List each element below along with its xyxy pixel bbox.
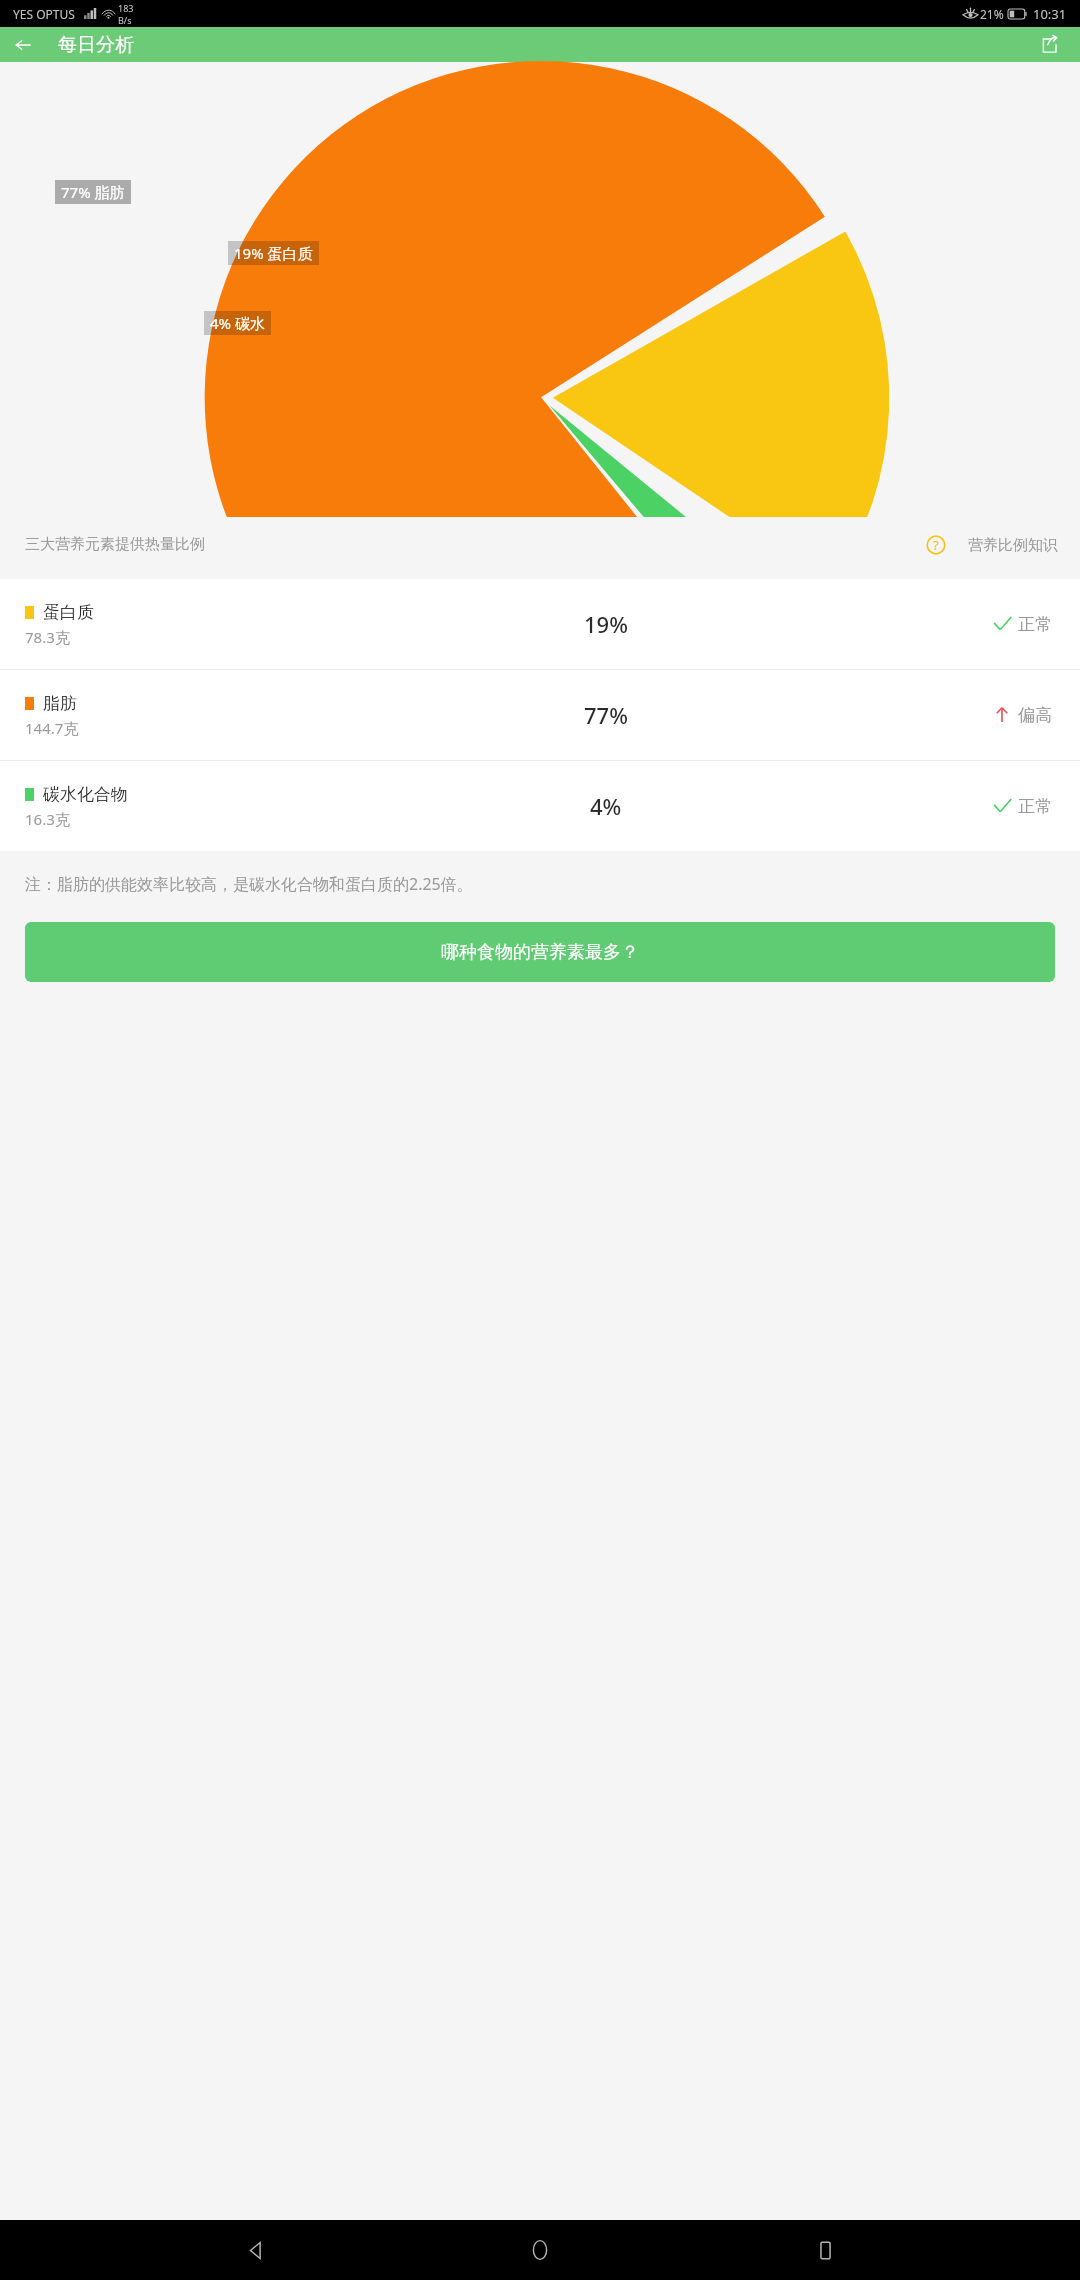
button[interactable]: 碳水化合物 bbox=[0, 761, 1080, 851]
staticText: 脂肪 bbox=[43, 693, 77, 714]
staticText: YES OPTUS bbox=[13, 6, 75, 22]
staticText: 正常 bbox=[1018, 796, 1052, 817]
button[interactable]: 蛋白质 bbox=[0, 579, 1080, 669]
staticText: 19% 蛋白质 bbox=[234, 243, 313, 263]
staticText: ? bbox=[933, 536, 939, 554]
staticText: 营养比例知识 bbox=[968, 536, 1058, 555]
staticText: 77% 脂肪 bbox=[61, 182, 125, 202]
button[interactable]: Back bbox=[225, 2220, 285, 2280]
button[interactable]: 脂肪 bbox=[0, 670, 1080, 760]
staticText: 正常 bbox=[1018, 614, 1052, 635]
button[interactable]: 哪种食物的营养素最多？ bbox=[25, 922, 1055, 982]
staticText: 哪种食物的营养素最多？ bbox=[441, 941, 639, 964]
staticText: 78.3克 bbox=[25, 627, 70, 647]
staticText: 4% bbox=[590, 791, 622, 821]
button[interactable]: Back bbox=[0, 27, 46, 62]
staticText: 183 bbox=[118, 2, 134, 14]
button[interactable]: Recent apps bbox=[795, 2220, 855, 2280]
staticText: 19% bbox=[584, 609, 628, 639]
staticText: 16.3克 bbox=[25, 809, 70, 829]
staticText: 碳水化合物 bbox=[43, 784, 128, 805]
button[interactable]: Share bbox=[1026, 27, 1072, 62]
staticText: 4% 碳水 bbox=[210, 313, 265, 333]
staticText: 偏高 bbox=[1018, 705, 1052, 726]
staticText: 21% bbox=[980, 6, 1004, 22]
staticText: 10:31 bbox=[1033, 5, 1067, 23]
staticText: 144.7克 bbox=[25, 718, 79, 738]
button[interactable]: ? bbox=[926, 535, 1058, 555]
staticText: B/s bbox=[118, 14, 132, 26]
staticText: 每日分析 bbox=[58, 33, 134, 57]
button[interactable]: Home bbox=[510, 2220, 570, 2280]
staticText: 77% bbox=[584, 700, 628, 730]
staticText: 注：脂肪的供能效率比较高，是碳水化合物和蛋白质的2.25倍。 bbox=[25, 873, 473, 895]
staticText: 三大营养元素提供热量比例 bbox=[25, 535, 205, 554]
staticText: 蛋白质 bbox=[43, 602, 94, 623]
